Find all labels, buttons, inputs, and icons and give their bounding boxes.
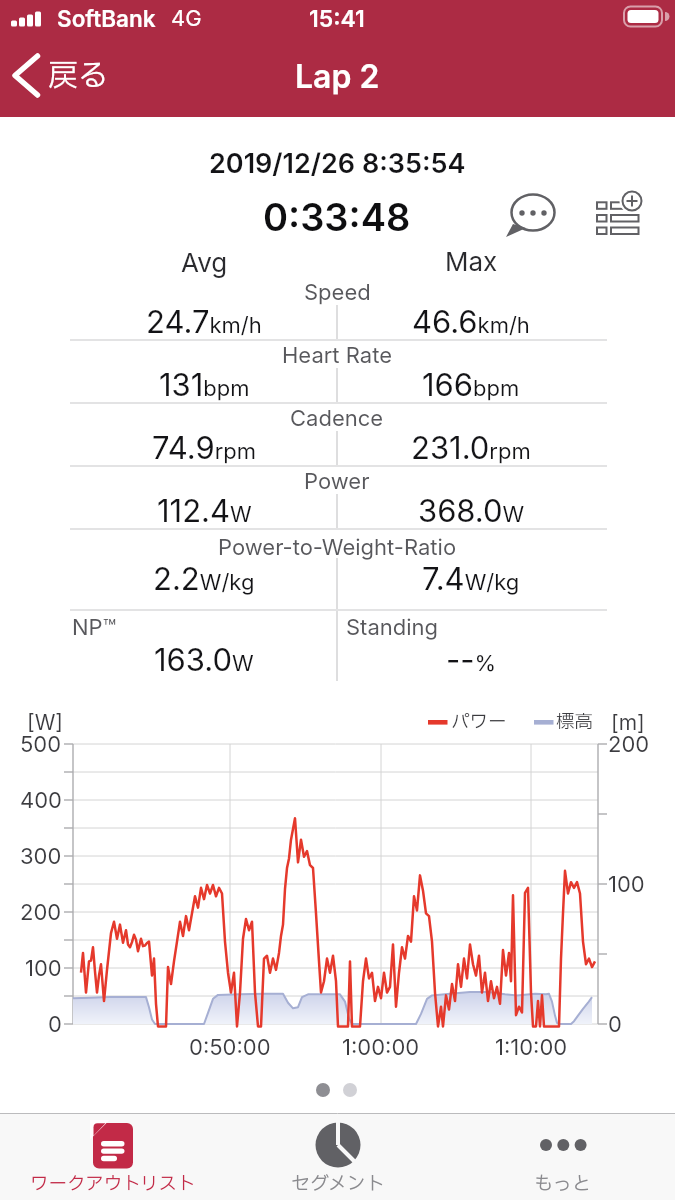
- staticText: 100: [608, 871, 645, 898]
- button[interactable]: もっと: [450, 1113, 675, 1200]
- staticText: 300: [20, 843, 62, 870]
- staticText: 100: [25, 955, 62, 982]
- button[interactable]: [505, 188, 563, 242]
- staticText: セグメント: [291, 1170, 385, 1198]
- staticText: 0: [48, 1011, 62, 1038]
- staticText: 368.0W: [418, 492, 525, 530]
- staticText: パワー: [451, 708, 507, 736]
- staticText: 標高: [556, 708, 594, 736]
- staticText: 200: [608, 731, 650, 758]
- staticText: もっと: [534, 1170, 592, 1198]
- button[interactable]: ワークアウトリスト: [0, 1113, 225, 1200]
- button[interactable]: [590, 188, 646, 242]
- staticText: 1:00:00: [342, 1034, 420, 1061]
- staticText: Speed: [304, 279, 371, 306]
- staticText: [m]: [611, 710, 645, 735]
- staticText: Avg: [181, 247, 228, 278]
- staticText: Standing: [346, 614, 439, 641]
- staticText: Heart Rate: [282, 342, 392, 369]
- staticText: 131bpm: [159, 366, 250, 404]
- staticText: 163.0W: [154, 641, 254, 679]
- staticText: 2.2W/kg: [153, 560, 255, 598]
- staticText: NP™: [72, 614, 117, 641]
- staticText: 500: [20, 731, 62, 758]
- staticText: --%: [446, 641, 497, 679]
- staticText: [W]: [27, 710, 64, 735]
- staticText: 231.0rpm: [411, 429, 531, 467]
- staticText: 0: [608, 1011, 622, 1038]
- button[interactable]: セグメント: [225, 1113, 450, 1200]
- button[interactable]: [8, 46, 120, 110]
- staticText: 7.4W/kg: [422, 560, 520, 598]
- staticText: 戻る: [48, 54, 108, 98]
- staticText: ワークアウトリスト: [30, 1170, 196, 1198]
- staticText: 15:41: [309, 5, 365, 33]
- staticText: Power: [304, 468, 370, 495]
- staticText: 200: [20, 899, 62, 926]
- staticText: Max: [445, 246, 498, 277]
- staticText: 4G: [171, 5, 202, 32]
- staticText: 1:10:00: [495, 1034, 568, 1061]
- staticText: 74.9rpm: [152, 429, 257, 467]
- staticText: 46.6km/h: [412, 303, 530, 341]
- staticText: Lap 2: [295, 57, 380, 96]
- staticText: SoftBank: [57, 5, 156, 32]
- staticText: 166bpm: [422, 366, 520, 404]
- staticText: 2019/12/26 8:35:54: [209, 147, 466, 180]
- staticText: 0:33:48: [263, 194, 411, 238]
- staticText: 24.7km/h: [146, 303, 262, 341]
- staticText: 0:50:00: [189, 1034, 271, 1061]
- staticText: 400: [20, 787, 62, 814]
- staticText: Cadence: [290, 405, 384, 432]
- staticText: Power-to-Weight-Ratio: [218, 534, 457, 561]
- staticText: 112.4W: [157, 492, 252, 530]
